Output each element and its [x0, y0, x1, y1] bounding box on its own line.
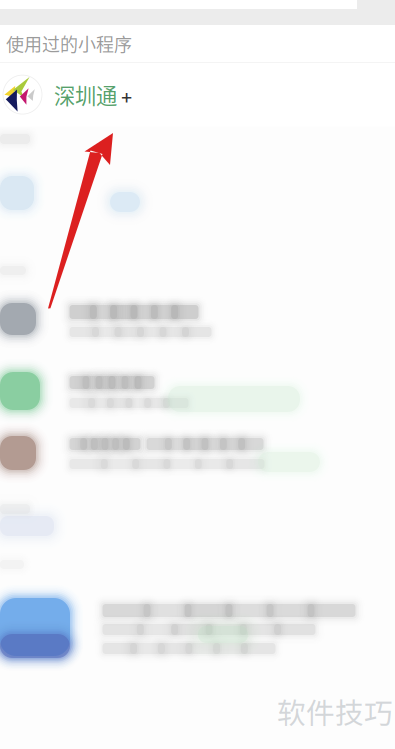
staticText: +: [120, 84, 133, 109]
staticText: 软件技巧: [277, 690, 393, 732]
button[interactable]: 深圳通: [0, 63, 395, 127]
staticText: 使用过的小程序: [6, 30, 132, 57]
staticText: 深圳通: [54, 79, 117, 110]
